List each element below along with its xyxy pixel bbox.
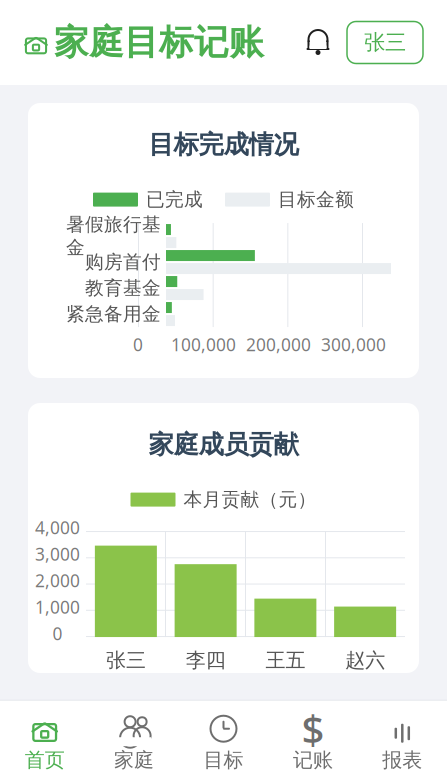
staticText: 目标金额: [278, 188, 354, 211]
staticText: 1,000: [35, 595, 80, 618]
staticText: 100,000: [171, 333, 236, 356]
staticText: 本月贡献（元）: [183, 488, 316, 511]
staticText: 已完成: [146, 188, 203, 211]
staticText: 赵六: [345, 648, 385, 673]
staticText: 购房首付: [85, 251, 161, 273]
button[interactable]: 目标: [179, 707, 268, 780]
staticText: 3,000: [35, 542, 80, 565]
staticText: 0: [133, 333, 143, 356]
staticText: 李四: [186, 648, 226, 673]
staticText: 2,000: [35, 569, 80, 592]
staticText: 200,000: [246, 333, 311, 356]
staticText: 暑假旅行基金: [66, 213, 161, 259]
button[interactable]: 通知: [299, 22, 337, 62]
button[interactable]: $: [268, 707, 358, 780]
staticText: 教育基金: [85, 277, 161, 299]
staticText: 首页: [25, 748, 65, 772]
staticText: 家庭目标记账: [54, 21, 264, 64]
staticText: 张三: [106, 648, 146, 673]
button[interactable]: 张三: [347, 21, 423, 63]
staticText: 张三: [364, 29, 406, 56]
button[interactable]: 首页: [0, 707, 89, 780]
staticText: 目标: [203, 748, 243, 772]
staticText: 4,000: [35, 516, 80, 539]
staticText: 记账: [293, 748, 333, 772]
staticText: 报表: [382, 748, 422, 772]
button[interactable]: 家庭: [89, 707, 179, 780]
staticText: 目标完成情况: [148, 129, 298, 160]
staticText: 300,000: [321, 333, 386, 356]
staticText: $: [301, 702, 324, 755]
staticText: 家庭: [114, 748, 154, 772]
staticText: 家庭成员贡献: [148, 429, 298, 460]
staticText: 王五: [265, 648, 305, 673]
staticText: 紧急备用金: [66, 303, 161, 325]
staticText: 0: [52, 622, 62, 645]
button[interactable]: 报表: [358, 707, 447, 780]
